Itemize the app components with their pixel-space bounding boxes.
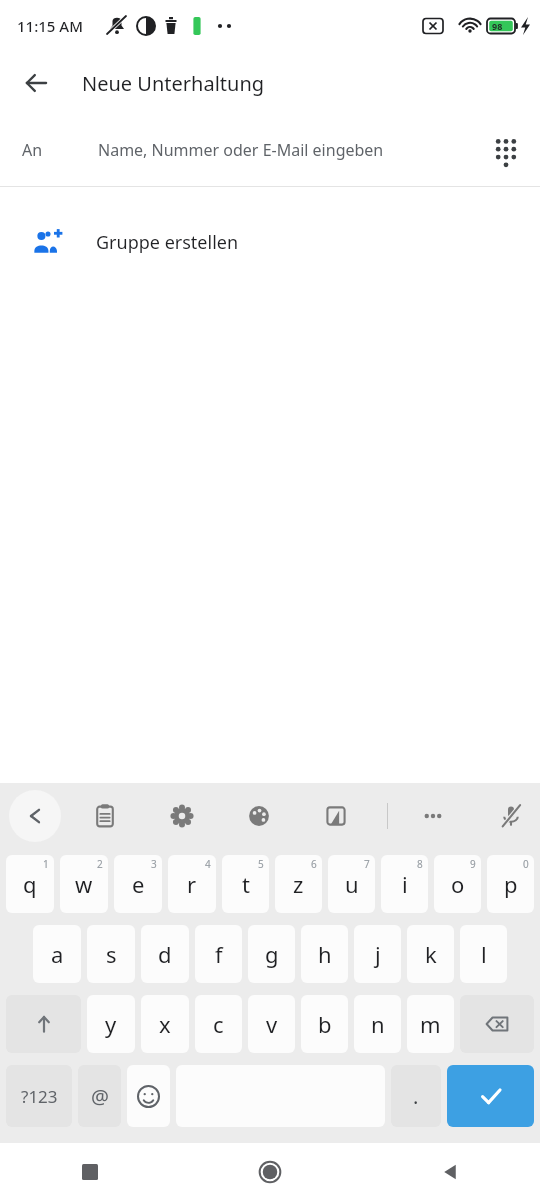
staticText: 4 <box>205 857 211 871</box>
staticText: 8 <box>417 857 423 871</box>
staticText: i <box>402 869 408 899</box>
button[interactable]: More options <box>407 783 459 849</box>
button[interactable]: Backspace <box>460 995 534 1053</box>
button[interactable]: Back <box>360 1143 540 1200</box>
staticText: Neue Unterhaltung <box>82 70 265 97</box>
staticText: . <box>413 1083 419 1110</box>
staticText: k <box>425 939 437 969</box>
staticText: 9 <box>470 857 476 871</box>
button[interactable]: @ <box>78 1065 121 1127</box>
staticText: Gruppe erstellen <box>96 230 239 255</box>
button[interactable]: Settings <box>156 783 208 849</box>
button[interactable]: ?123 <box>6 1065 72 1127</box>
staticText: l <box>481 939 487 969</box>
button[interactable]: i <box>381 855 428 913</box>
staticText: 2 <box>97 857 103 871</box>
button[interactable]: o <box>434 855 481 913</box>
button[interactable]: j <box>354 925 401 983</box>
button[interactable]: u <box>328 855 375 913</box>
button[interactable]: e <box>114 855 162 913</box>
staticText: p <box>504 869 518 899</box>
button[interactable]: Gruppe erstellen <box>0 187 540 297</box>
button[interactable]: Home <box>180 1143 360 1200</box>
staticText: ?123 <box>21 1085 58 1108</box>
button[interactable]: w <box>60 855 108 913</box>
button[interactable]: Dialpad <box>480 124 532 176</box>
staticText: 0 <box>523 857 529 871</box>
button[interactable]: z <box>275 855 322 913</box>
button[interactable]: n <box>354 995 401 1053</box>
button[interactable]: p <box>487 855 534 913</box>
staticText: g <box>265 939 279 969</box>
button[interactable]: Back <box>10 57 62 109</box>
staticText: 11:15 AM <box>17 16 83 36</box>
button[interactable]: Emoji <box>127 1065 170 1127</box>
staticText: @ <box>91 1083 109 1110</box>
staticText: q <box>23 869 37 899</box>
button[interactable]: m <box>407 995 454 1053</box>
staticText: 6 <box>311 857 317 871</box>
button[interactable]: Recents <box>0 1143 180 1200</box>
staticText: u <box>345 869 359 899</box>
button[interactable]: a <box>33 925 81 983</box>
button[interactable]: . <box>391 1065 441 1127</box>
staticText: f <box>215 939 223 969</box>
button[interactable]: d <box>141 925 189 983</box>
staticText: o <box>451 869 465 899</box>
button[interactable]: Theme <box>233 783 285 849</box>
staticText: a <box>51 939 64 969</box>
staticText: s <box>106 939 117 969</box>
button[interactable]: t <box>222 855 269 913</box>
button[interactable]: s <box>87 925 135 983</box>
staticText: 3 <box>151 857 157 871</box>
staticText: w <box>75 869 93 899</box>
button[interactable]: q <box>6 855 54 913</box>
staticText: j <box>375 939 381 969</box>
staticText: Name, Nummer oder E-Mail eingeben <box>98 139 384 161</box>
staticText: An <box>22 139 43 161</box>
button[interactable]: k <box>407 925 454 983</box>
button[interactable]: v <box>248 995 295 1053</box>
button[interactable]: Mute microphone <box>485 783 537 849</box>
staticText: z <box>293 869 304 899</box>
button[interactable]: c <box>195 995 242 1053</box>
staticText: n <box>371 1009 385 1039</box>
staticText: t <box>242 869 250 899</box>
staticText: 7 <box>364 857 370 871</box>
staticText: 98 <box>492 20 503 32</box>
button[interactable]: l <box>460 925 507 983</box>
staticText: y <box>105 1009 117 1039</box>
staticText: h <box>318 939 332 969</box>
button[interactable]: x <box>141 995 189 1053</box>
button[interactable]: Enter <box>447 1065 534 1127</box>
staticText: m <box>420 1009 441 1039</box>
button[interactable]: Shift <box>6 995 81 1053</box>
button[interactable]: g <box>248 925 295 983</box>
button[interactable]: f <box>195 925 242 983</box>
staticText: 1 <box>43 857 49 871</box>
button[interactable]: Clipboard <box>79 783 131 849</box>
button[interactable]: Resize <box>310 783 362 849</box>
button[interactable]: y <box>87 995 135 1053</box>
button[interactable]: h <box>301 925 348 983</box>
button[interactable]: b <box>301 995 348 1053</box>
staticText: b <box>318 1009 332 1039</box>
staticText: d <box>158 939 172 969</box>
staticText: c <box>213 1009 224 1039</box>
staticText: x <box>159 1009 171 1039</box>
button[interactable]: Previous <box>9 790 61 842</box>
staticText: v <box>266 1009 278 1039</box>
staticText: r <box>187 869 197 899</box>
staticText: e <box>132 869 145 899</box>
staticText: 5 <box>258 857 264 871</box>
button[interactable]: r <box>168 855 216 913</box>
